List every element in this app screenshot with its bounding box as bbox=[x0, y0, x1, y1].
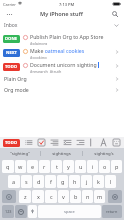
staticText: d bbox=[37, 178, 41, 185]
button[interactable]: j bbox=[81, 175, 92, 188]
staticText: v bbox=[62, 193, 65, 200]
staticText: Make oatmeal cookies bbox=[30, 47, 85, 54]
staticText: k bbox=[97, 178, 100, 185]
button[interactable]: m bbox=[94, 190, 105, 203]
staticText: sighting's bbox=[94, 150, 114, 156]
staticText: TODO bbox=[5, 140, 18, 146]
staticText: NEXT bbox=[6, 50, 17, 56]
button[interactable]: x bbox=[32, 190, 44, 203]
staticText: TODO bbox=[5, 64, 18, 70]
staticText: n bbox=[86, 193, 90, 200]
staticText: 7:13 PM bbox=[59, 2, 75, 7]
button[interactable]: sighting's bbox=[83, 148, 124, 158]
button[interactable]: "sighting" bbox=[0, 148, 40, 158]
staticText: Document unicorn sighting bbox=[30, 61, 97, 68]
staticText: b bbox=[74, 193, 78, 200]
button[interactable]: y bbox=[63, 160, 74, 173]
button[interactable]: q bbox=[2, 160, 14, 173]
button[interactable]: Plain Org bbox=[0, 73, 124, 84]
button[interactable]: v bbox=[58, 190, 69, 203]
staticText: sightings bbox=[52, 150, 71, 156]
staticText: i bbox=[92, 163, 94, 170]
staticText: Org mode bbox=[4, 86, 114, 93]
button[interactable]: NEXT bbox=[0, 45, 124, 59]
button[interactable]: Delete bbox=[108, 190, 122, 203]
button[interactable]: List bbox=[23, 138, 33, 147]
staticText: q bbox=[6, 163, 10, 170]
button[interactable]: i bbox=[87, 160, 98, 173]
staticText: u bbox=[79, 163, 83, 170]
staticText: s bbox=[25, 178, 28, 185]
staticText: g bbox=[61, 178, 65, 185]
staticText: r bbox=[43, 163, 46, 170]
button[interactable]: l bbox=[105, 175, 116, 188]
staticText: #cooking bbox=[30, 55, 47, 59]
staticText: w bbox=[18, 163, 23, 170]
staticText: p bbox=[115, 163, 119, 170]
button[interactable]: s bbox=[21, 175, 32, 188]
button[interactable]: w bbox=[15, 160, 26, 173]
button[interactable]: TODO bbox=[3, 63, 20, 71]
button[interactable]: TODO bbox=[0, 59, 124, 73]
button[interactable]: space bbox=[38, 205, 101, 218]
button[interactable]: Format bbox=[88, 138, 98, 147]
button[interactable]: d bbox=[33, 175, 44, 188]
staticText: DONE bbox=[5, 36, 18, 42]
staticText: return bbox=[106, 209, 118, 214]
button[interactable]: k bbox=[93, 175, 104, 188]
staticText: Publish Plain Org to App Store bbox=[30, 33, 104, 40]
staticText: a bbox=[12, 178, 16, 185]
button[interactable]: Org mode bbox=[0, 84, 124, 95]
button[interactable]: c bbox=[45, 190, 57, 203]
button[interactable]: DONE bbox=[0, 31, 124, 45]
button[interactable]: n bbox=[82, 190, 93, 203]
staticText: My iPhone stuff bbox=[40, 10, 83, 18]
button[interactable]: Move right bbox=[75, 138, 85, 147]
button[interactable]: t bbox=[51, 160, 62, 173]
button[interactable]: h bbox=[69, 175, 80, 188]
button[interactable]: Outdent bbox=[62, 138, 72, 147]
staticText: #plainorg bbox=[30, 41, 48, 45]
button[interactable]: Emoji bbox=[15, 205, 27, 218]
button[interactable]: z bbox=[19, 190, 31, 203]
staticText: Carrier bbox=[3, 2, 17, 7]
staticText: z bbox=[24, 193, 27, 200]
button[interactable]: Text style bbox=[98, 138, 108, 147]
button[interactable]: r bbox=[39, 160, 50, 173]
staticText: h bbox=[73, 178, 77, 185]
button[interactable]: NEXT bbox=[3, 49, 20, 57]
button[interactable]: Inbox bbox=[4, 20, 120, 31]
staticText: t bbox=[56, 163, 58, 170]
staticText: "sighting" bbox=[10, 150, 30, 156]
button[interactable]: More bbox=[4, 9, 14, 19]
button[interactable]: Dictate bbox=[28, 205, 37, 218]
button[interactable]: a bbox=[8, 175, 20, 188]
staticText: l bbox=[110, 178, 112, 185]
staticText: y bbox=[67, 163, 70, 170]
staticText: Plain Org bbox=[4, 75, 114, 82]
button[interactable]: f bbox=[45, 175, 56, 188]
button[interactable]: return bbox=[102, 205, 122, 218]
button[interactable]: Shift bbox=[2, 190, 16, 203]
button[interactable]: u bbox=[75, 160, 86, 173]
button[interactable]: Indent bbox=[49, 138, 59, 147]
staticText: 123 bbox=[5, 209, 12, 214]
button[interactable]: p bbox=[111, 160, 122, 173]
staticText: Inbox bbox=[4, 22, 113, 29]
button[interactable]: o bbox=[99, 160, 110, 173]
staticText: f bbox=[50, 178, 52, 185]
button[interactable]: Hide keyboard bbox=[111, 138, 121, 147]
staticText: o bbox=[103, 163, 107, 170]
button[interactable]: sightings bbox=[41, 148, 82, 158]
button[interactable]: DONE bbox=[3, 35, 20, 43]
staticText: x bbox=[37, 193, 40, 200]
button[interactable]: Checkbox bbox=[36, 138, 46, 147]
button[interactable]: Search bbox=[110, 9, 120, 19]
staticText: c bbox=[50, 193, 53, 200]
button[interactable]: g bbox=[57, 175, 68, 188]
button[interactable]: e bbox=[27, 160, 38, 173]
button[interactable]: b bbox=[70, 190, 81, 203]
button[interactable]: TODO bbox=[3, 139, 20, 147]
staticText: e bbox=[31, 163, 35, 170]
button[interactable]: 123 bbox=[2, 205, 14, 218]
